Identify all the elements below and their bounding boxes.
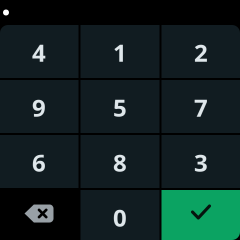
staticText: 0 xyxy=(113,202,127,233)
staticText: 6 xyxy=(32,147,46,178)
button[interactable]: 8 xyxy=(80,135,159,188)
button[interactable]: 4 xyxy=(0,25,78,78)
staticText: 1 xyxy=(113,37,127,68)
button[interactable]: 0 xyxy=(80,190,159,240)
button[interactable]: 2 xyxy=(161,25,240,78)
button[interactable]: Delete xyxy=(0,190,78,240)
button[interactable]: 5 xyxy=(80,80,159,133)
staticText: 9 xyxy=(32,92,46,123)
button[interactable]: 3 xyxy=(161,135,240,188)
button[interactable]: 6 xyxy=(0,135,78,188)
staticText: 7 xyxy=(194,92,208,123)
button[interactable]: Confirm xyxy=(161,190,240,240)
button[interactable]: 1 xyxy=(80,25,159,78)
staticText: 8 xyxy=(113,147,127,178)
button[interactable]: 9 xyxy=(0,80,78,133)
staticText: 3 xyxy=(194,147,208,178)
staticText: 4 xyxy=(32,37,46,68)
staticText: 2 xyxy=(194,37,208,68)
button[interactable]: 7 xyxy=(161,80,240,133)
staticText: 5 xyxy=(113,92,127,123)
